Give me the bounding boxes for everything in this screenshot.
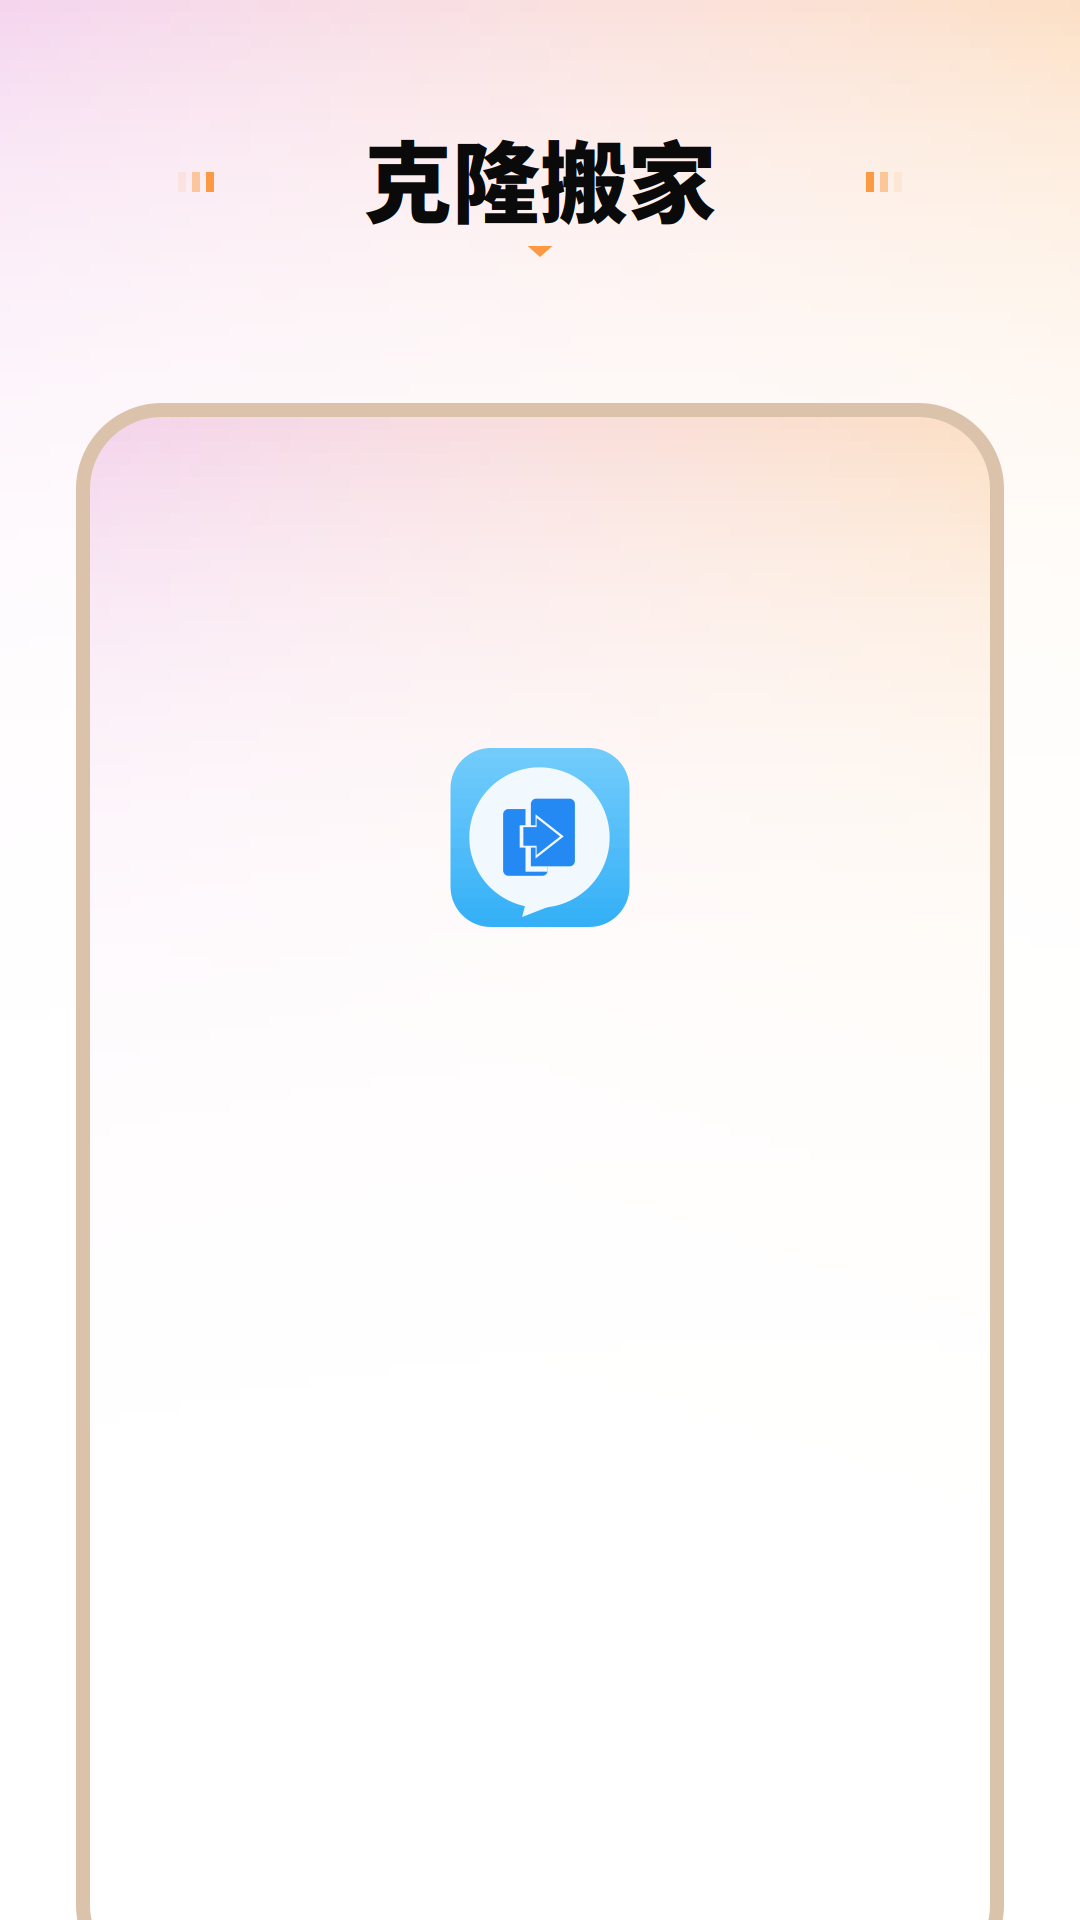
button[interactable]: 克隆搬家 xyxy=(450,748,629,927)
staticText: 克隆搬家 xyxy=(364,113,716,241)
button[interactable]: 克隆搬家 xyxy=(364,113,716,241)
